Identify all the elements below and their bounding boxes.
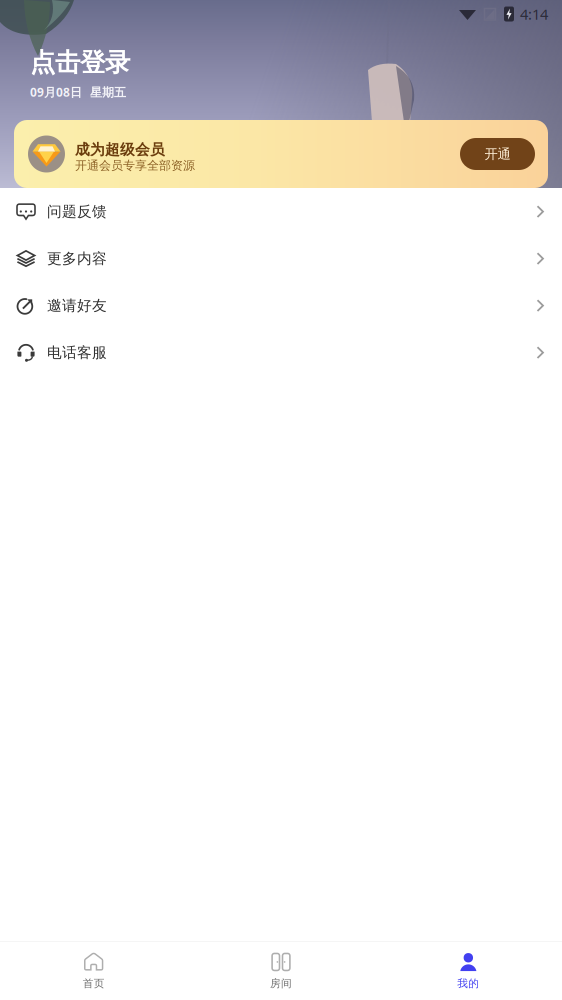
staticText: 我的 <box>457 977 479 990</box>
staticText: 09月08日 星期五 <box>30 84 126 100</box>
staticText: 更多内容 <box>47 249 107 267</box>
button[interactable]: 邀请好友 <box>0 282 562 329</box>
staticText: 首页 <box>83 977 105 990</box>
staticText: 4:14 <box>520 4 548 24</box>
button[interactable]: 开通 <box>460 138 535 170</box>
button[interactable]: 更多内容 <box>0 235 562 282</box>
staticText: 点击登录 <box>30 47 130 78</box>
staticText: 开通 <box>484 146 510 162</box>
button[interactable]: 电话客服 <box>0 329 562 376</box>
staticText: 成为超级会员 <box>75 140 165 158</box>
button[interactable]: 房间 <box>187 942 375 1000</box>
button[interactable]: 问题反馈 <box>0 188 562 235</box>
staticText: 邀请好友 <box>47 296 107 314</box>
staticText: 电话客服 <box>47 343 107 361</box>
button[interactable]: 点击登录 <box>30 47 130 78</box>
staticText: 开通会员专享全部资源 <box>75 158 195 173</box>
staticText: 房间 <box>270 977 292 990</box>
button[interactable]: 首页 <box>0 942 187 1000</box>
staticText: 问题反馈 <box>47 202 107 220</box>
button[interactable]: 我的 <box>375 942 562 1000</box>
